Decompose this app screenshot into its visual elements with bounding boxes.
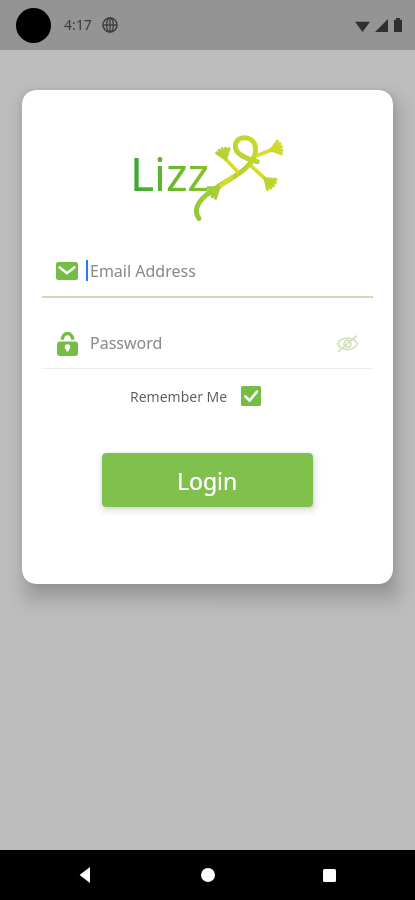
button[interactable]: Back [51,850,121,900]
button[interactable]: Login [102,453,313,507]
staticText: Login [177,465,238,496]
staticText: Email Address [90,260,196,282]
staticText: Password [90,332,163,354]
button[interactable]: Recents [294,850,364,900]
staticText: 4:17 [64,15,92,34]
button[interactable]: Home [173,850,243,900]
button[interactable]: Show password [328,326,366,360]
button[interactable]: Remember Me [126,382,265,410]
staticText: Lizz [130,142,210,205]
staticText: Remember Me [130,387,228,406]
